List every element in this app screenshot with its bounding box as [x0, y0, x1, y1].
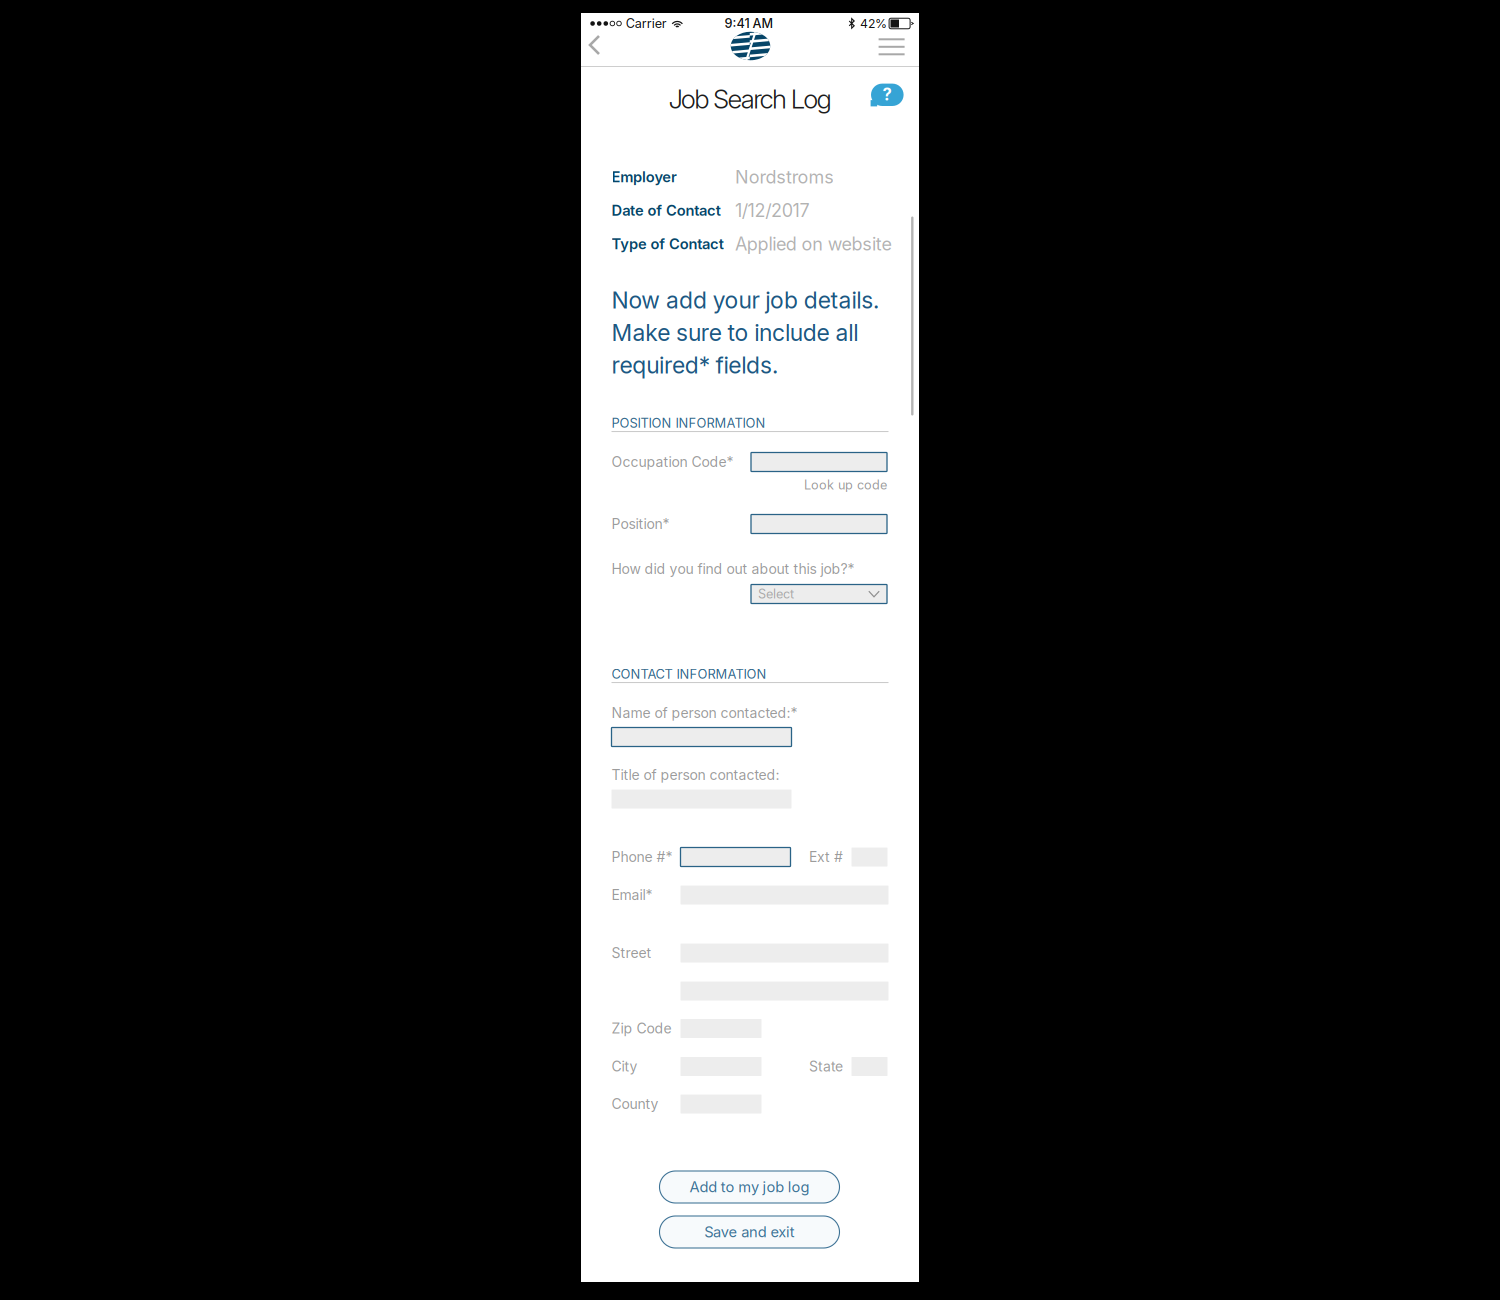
staticText: Position*	[611, 515, 669, 532]
staticText: required* fields.	[611, 351, 778, 379]
staticText: County	[611, 1095, 658, 1112]
button[interactable]: Name of person contacted	[611, 727, 791, 746]
staticText: Add to my job log	[690, 1178, 809, 1196]
staticText: Now add your job details.	[611, 286, 879, 314]
staticText: Type of Contact	[611, 235, 724, 253]
button[interactable]: Add to my job log	[659, 1171, 839, 1203]
staticText: Street	[611, 944, 651, 961]
button[interactable]: Menu	[872, 30, 912, 64]
staticText: Look up code	[804, 477, 887, 493]
staticText: Phone #*	[611, 848, 672, 865]
button[interactable]: Back	[574, 28, 614, 62]
staticText: Save and exit	[704, 1223, 795, 1241]
button[interactable]: Select	[751, 584, 887, 603]
button[interactable]: Save and exit	[659, 1216, 839, 1248]
staticText: POSITION INFORMATION	[611, 415, 765, 431]
staticText: City	[611, 1058, 637, 1075]
staticText: Name of person contacted:*	[611, 704, 797, 721]
button[interactable]: Look up code	[751, 478, 887, 492]
button[interactable]: Phone number	[680, 847, 790, 866]
staticText: Zip Code	[611, 1020, 671, 1037]
staticText: Applied on website	[735, 233, 892, 255]
staticText: Carrier	[626, 16, 667, 31]
staticText: 9:41 AM	[724, 16, 773, 31]
button[interactable]: Help	[870, 84, 904, 107]
staticText: Date of Contact	[611, 202, 721, 219]
staticText: Employer	[611, 168, 677, 186]
staticText: Title of person contacted:	[611, 766, 779, 783]
staticText: Select	[758, 586, 794, 602]
staticText: Occupation Code*	[611, 453, 733, 470]
staticText: 1/12/2017	[735, 200, 809, 221]
staticText: State	[809, 1058, 843, 1075]
staticText: 42%	[860, 16, 887, 31]
staticText: Ext #	[809, 848, 843, 865]
button[interactable]: Occupation Code	[751, 452, 887, 471]
staticText: Make sure to include all	[611, 318, 858, 346]
staticText: Job Search Log	[668, 83, 832, 115]
staticText: Nordstroms	[735, 166, 834, 188]
staticText: ?	[882, 84, 891, 104]
button[interactable]: County	[680, 1094, 761, 1113]
staticText: How did you find out about this job?*	[611, 560, 854, 577]
staticText: Email*	[611, 886, 652, 903]
staticText: CONTACT INFORMATION	[611, 666, 766, 682]
button[interactable]: Position	[751, 514, 887, 533]
